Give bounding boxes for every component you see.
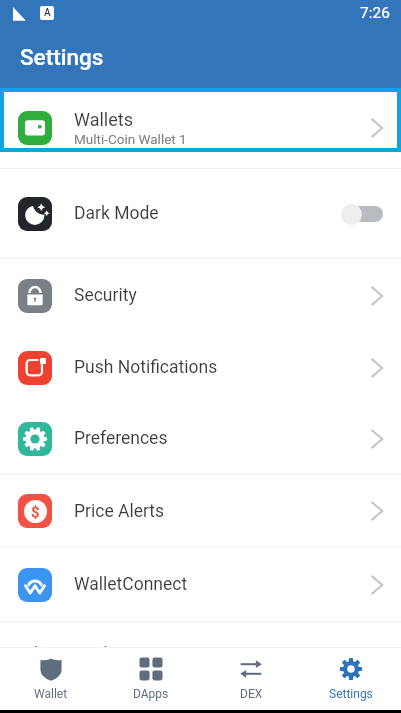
staticText: A [44, 7, 51, 19]
button[interactable]: Settings [301, 648, 401, 710]
staticText: DApps [133, 687, 169, 701]
staticText: Wallet [34, 687, 68, 701]
staticText: WalletConnect [74, 574, 188, 595]
button[interactable]: Preferences [0, 403, 401, 474]
staticText: $ [31, 503, 40, 521]
staticText: DEX [240, 687, 263, 701]
staticText: Settings [20, 44, 104, 70]
staticText: Preferences [74, 428, 168, 449]
staticText: Price Alerts [74, 501, 165, 522]
button[interactable]: DEX [201, 648, 301, 710]
button[interactable]: Wallet [0, 648, 101, 710]
staticText: Push Notifications [74, 357, 218, 378]
button[interactable]: $ [0, 475, 401, 547]
staticText: Settings [329, 687, 373, 701]
button[interactable]: Wallets [0, 88, 401, 168]
staticText: Wallets [74, 109, 133, 130]
button[interactable]: Dark Mode [0, 169, 401, 258]
button[interactable]: Security [0, 259, 401, 332]
staticText: Multi-Coin Wallet 1 [74, 131, 187, 147]
staticText: Dark Mode [74, 203, 159, 224]
button[interactable]: DApps [101, 648, 201, 710]
staticText: 7:26 [360, 4, 390, 22]
staticText: Join Community [19, 643, 119, 659]
button[interactable]: Push Notifications [0, 332, 401, 403]
staticText: Security [74, 285, 137, 306]
button[interactable]: WalletConnect [0, 548, 401, 621]
